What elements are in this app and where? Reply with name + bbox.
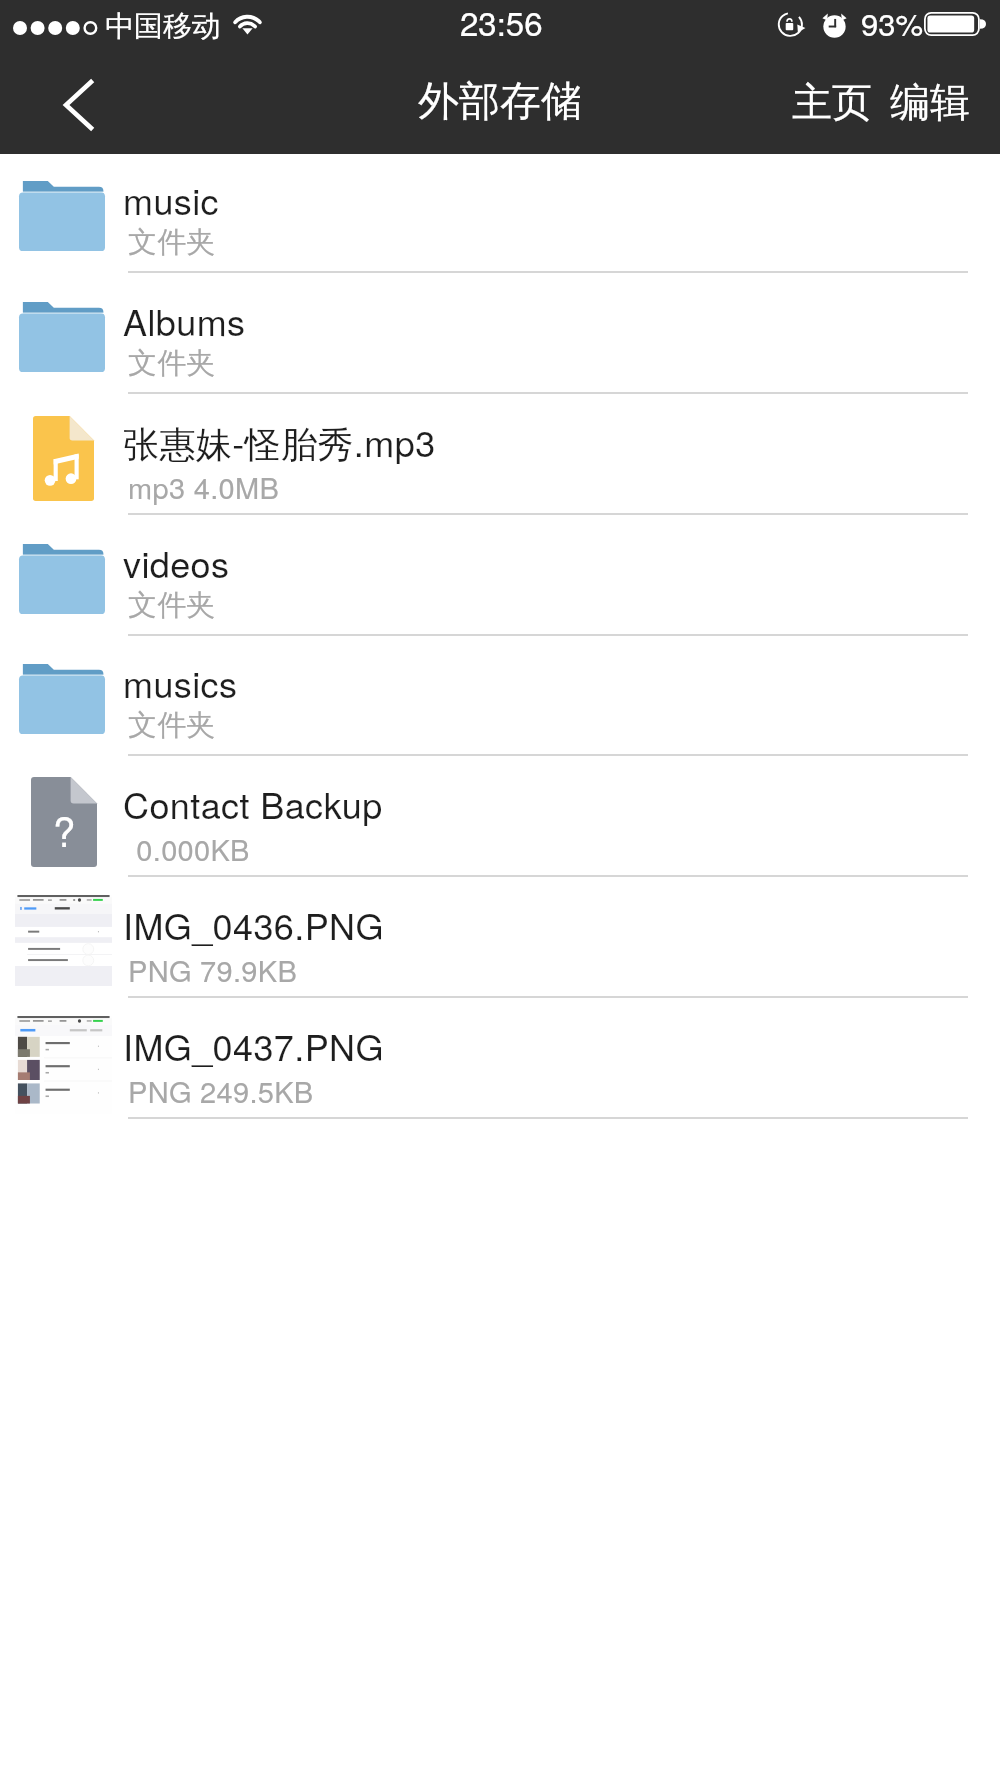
button[interactable]: music (0, 154, 1000, 275)
staticText: Contact Backup (123, 778, 383, 830)
staticText: 编辑 (890, 77, 970, 127)
staticText: 文件夹 (128, 345, 216, 382)
staticText: 文件夹 (128, 707, 216, 744)
staticText: PNG 249.5KB (128, 1070, 314, 1112)
button[interactable]: Back (0, 56, 140, 154)
button[interactable]: ? (0, 758, 1000, 879)
staticText: 张惠妹-怪胎秀.mp3 (123, 416, 436, 468)
staticText: 主页 (792, 77, 872, 127)
staticText: 文件夹 (128, 587, 216, 624)
button[interactable]: 主页 (783, 55, 881, 149)
button[interactable]: IMG_0436.PNG (0, 879, 1000, 1000)
staticText: 外部存储 (418, 76, 582, 128)
staticText: 93% (861, 0, 924, 44)
staticText: mp3 4.0MB (128, 466, 280, 508)
staticText: IMG_0436.PNG (123, 899, 384, 951)
staticText: ? (53, 801, 76, 858)
staticText: 23:56 (460, 0, 543, 45)
button[interactable]: 编辑 (881, 55, 1000, 149)
staticText: IMG_0437.PNG (123, 1020, 384, 1072)
button[interactable]: musics (0, 637, 1000, 758)
button[interactable]: IMG_0437.PNG (0, 1000, 1000, 1121)
staticText: musics (123, 657, 238, 709)
button[interactable]: Albums (0, 275, 1000, 396)
staticText: 中国移动 (105, 8, 221, 45)
staticText: PNG 79.9KB (128, 949, 298, 991)
staticText: 文件夹 (128, 224, 216, 261)
staticText: 0.000KB (128, 828, 250, 870)
staticText: Albums (123, 295, 246, 347)
staticText: music (123, 174, 219, 226)
staticText: videos (123, 537, 230, 589)
button[interactable]: videos (0, 517, 1000, 638)
button[interactable]: 张惠妹-怪胎秀.mp3 (0, 396, 1000, 517)
